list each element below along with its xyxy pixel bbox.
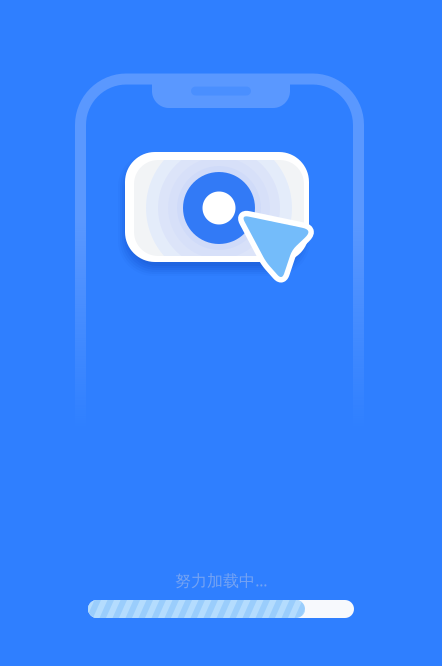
staticText: 努力加载中... <box>175 570 267 591</box>
